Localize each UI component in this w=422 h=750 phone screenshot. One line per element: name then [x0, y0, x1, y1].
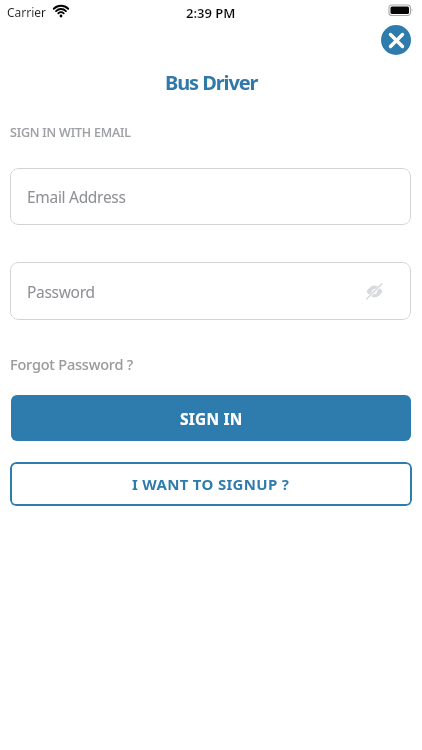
- staticText: Carrier: [7, 4, 47, 20]
- button[interactable]: Password: [10, 262, 411, 320]
- staticText: SIGN IN WITH EMAIL: [10, 124, 131, 141]
- button[interactable]: [381, 25, 411, 55]
- button[interactable]: I WANT TO SIGNUP ?: [10, 462, 412, 506]
- staticText: SIGN IN: [180, 408, 243, 429]
- staticText: Bus Driver: [165, 69, 258, 96]
- button[interactable]: Email Address: [10, 168, 411, 225]
- button[interactable]: SIGN IN: [11, 395, 411, 441]
- staticText: 2:39 PM: [186, 4, 236, 22]
- staticText: Email Address: [27, 186, 126, 207]
- staticText: I WANT TO SIGNUP ?: [132, 474, 290, 494]
- button[interactable]: Forgot Password ?: [10, 354, 134, 374]
- staticText: Password: [27, 281, 95, 302]
